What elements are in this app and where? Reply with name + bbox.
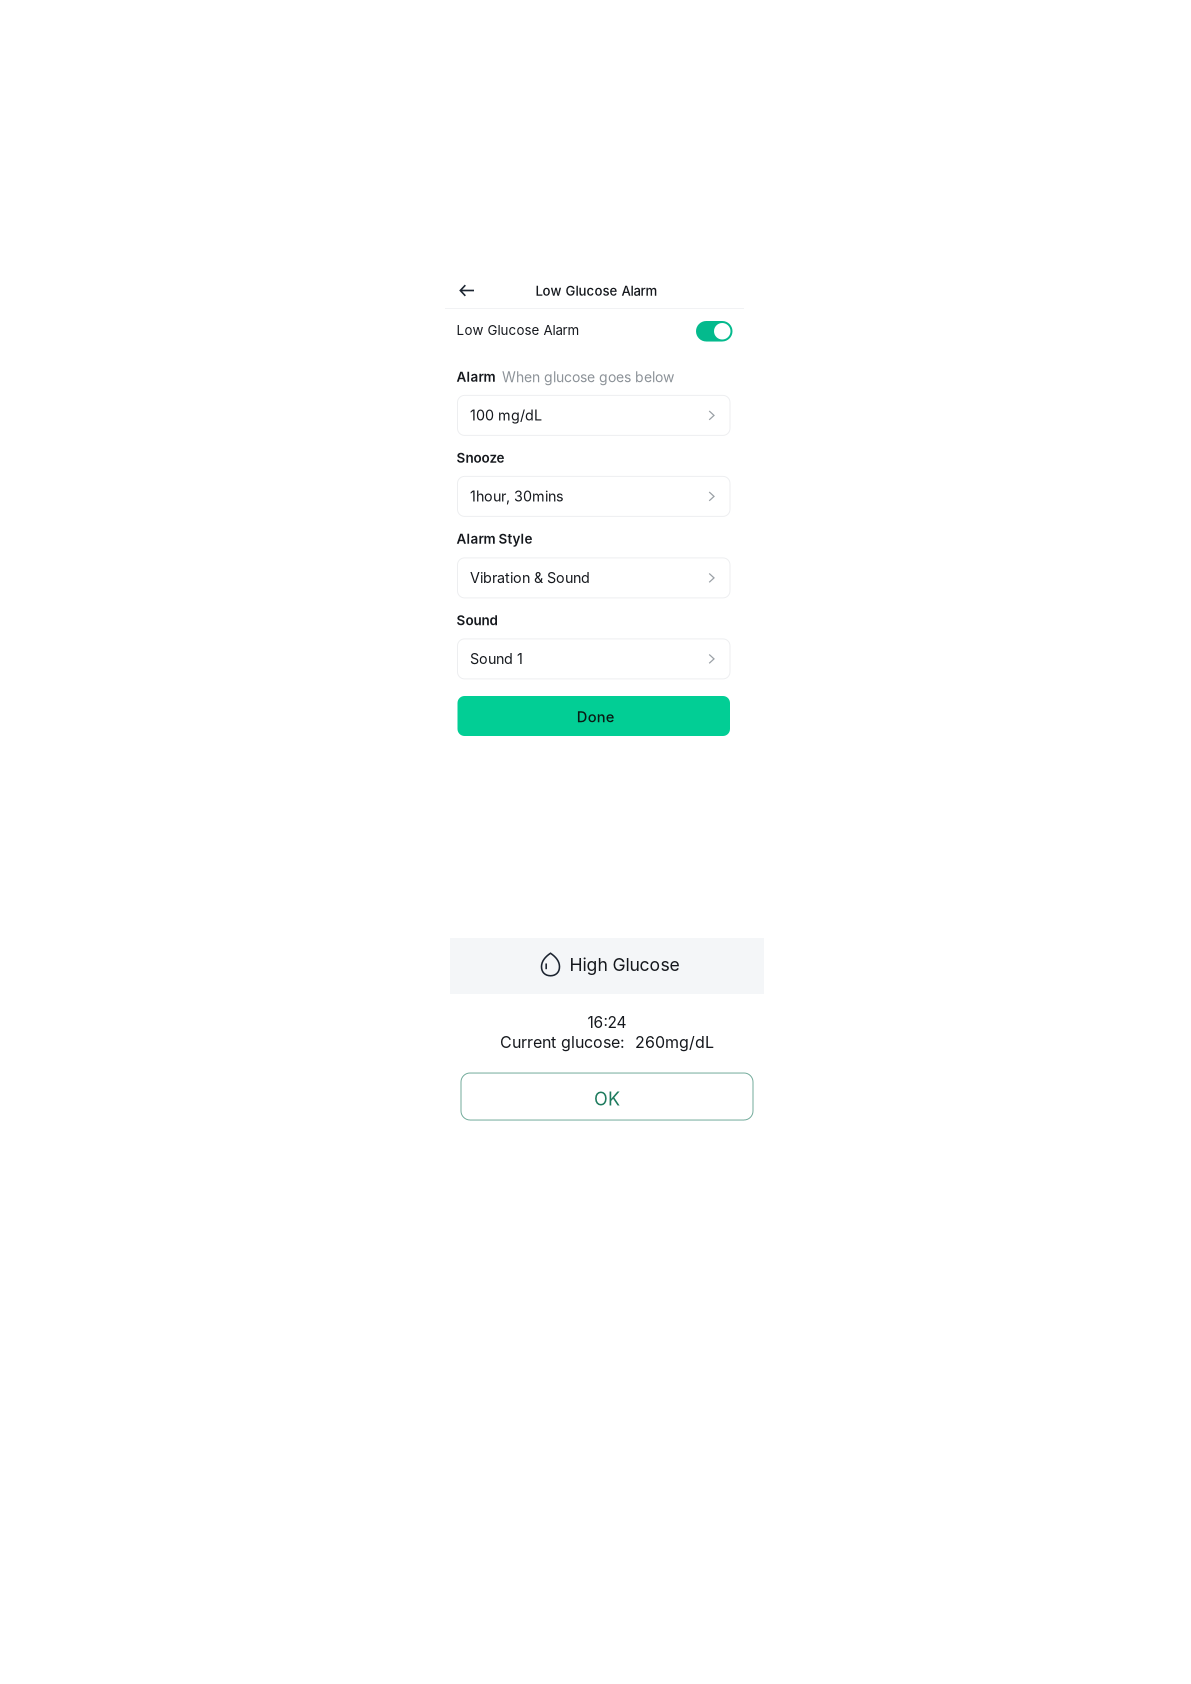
button[interactable]: Low Glucose Alarm, on <box>696 321 732 341</box>
staticText: Sound <box>456 612 497 628</box>
staticText: Sound 1 <box>470 650 523 667</box>
button[interactable]: Vibration & Sound <box>457 558 730 598</box>
button[interactable]: Sound 1 <box>457 639 730 679</box>
staticText: 100 mg/dL <box>470 407 542 424</box>
staticText: OK <box>594 1088 620 1110</box>
staticText: When glucose goes below <box>502 369 674 386</box>
staticText: Current glucose: 260mg/dL <box>500 1032 714 1052</box>
staticText: Snooze <box>456 450 504 466</box>
button[interactable]: 100 mg/dL <box>457 395 730 435</box>
button[interactable]: OK <box>461 1073 753 1120</box>
staticText: 16:24 <box>587 1013 626 1032</box>
staticText: Done <box>577 708 615 726</box>
button[interactable]: Back <box>455 279 479 302</box>
staticText: 1hour, 30mins <box>470 488 564 505</box>
staticText: High Glucose <box>569 954 679 975</box>
staticText: Alarm <box>456 369 495 385</box>
button[interactable]: 1hour, 30mins <box>457 476 730 516</box>
staticText: Low Glucose Alarm <box>456 322 579 338</box>
staticText: Vibration & Sound <box>470 569 590 586</box>
staticText: Alarm Style <box>456 531 532 547</box>
staticText: Low Glucose Alarm <box>535 283 657 299</box>
button[interactable]: Done <box>457 696 730 736</box>
